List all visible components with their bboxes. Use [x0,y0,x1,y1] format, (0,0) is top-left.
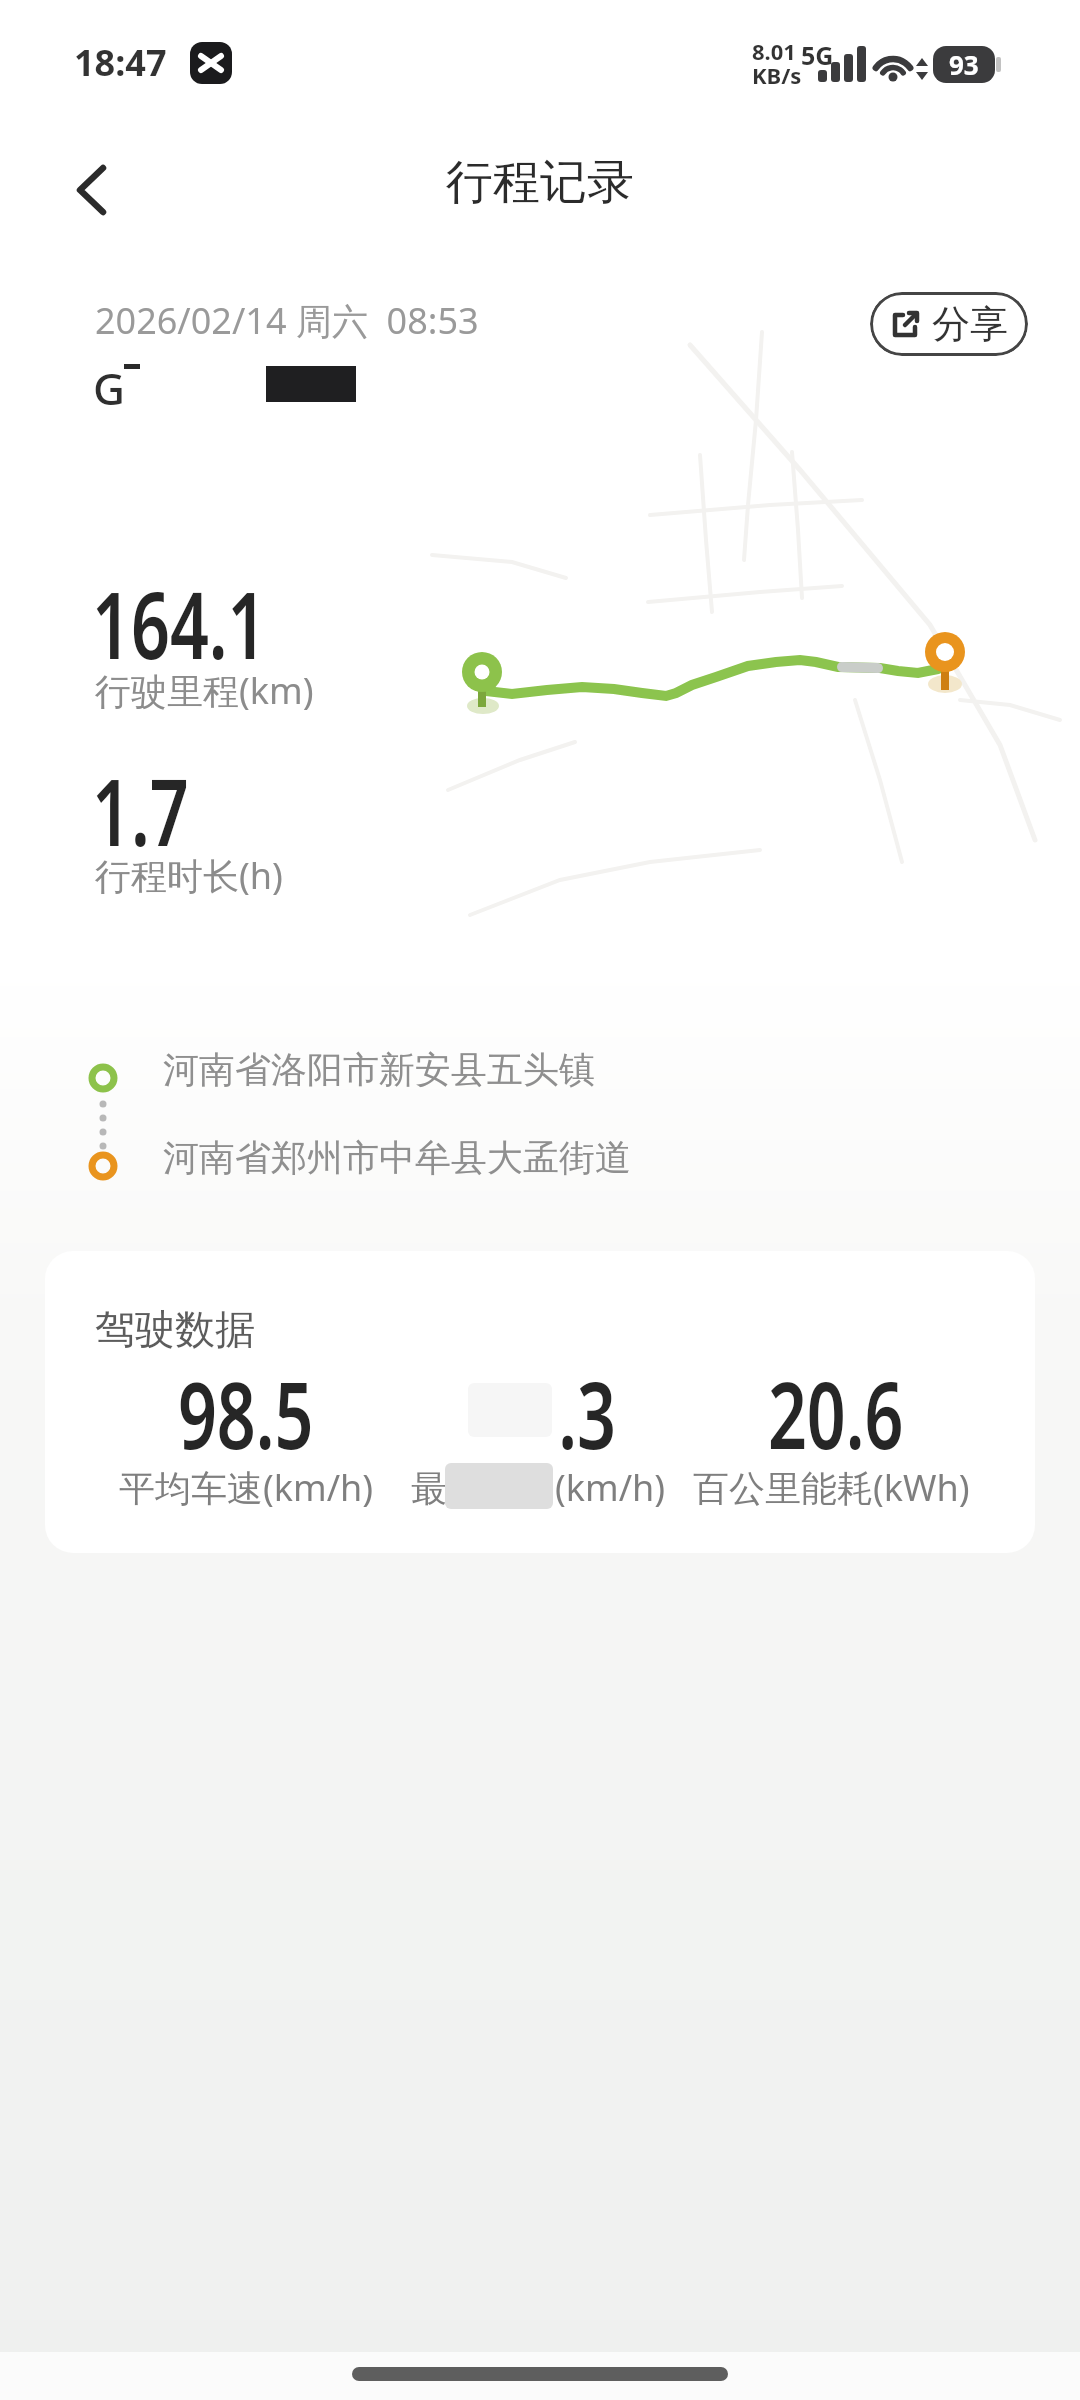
staticText: 2026/02/14 周六 08:53 [95,296,479,345]
staticText: 百公里能耗(kWh) [693,1463,970,1512]
staticText: 平均车速(km/h) [119,1463,374,1512]
staticText: 河南省郑州市中牟县大孟街道 [163,1135,631,1180]
staticText: G [93,358,125,418]
staticText: 18:47 [74,38,167,87]
button[interactable]: 驾驶数据 [45,1251,1035,1553]
staticText: KB/s [752,60,802,90]
staticText: 5G [801,38,834,72]
staticText: 164.1 [92,561,267,686]
staticText: 98.5 [178,1351,314,1476]
button[interactable] [55,152,131,228]
staticText: 最高车速(km/h) [411,1463,666,1512]
staticText: 行驶里程(km) [95,666,314,715]
staticText: 行程时长(h) [95,851,283,900]
staticText: .3 [558,1351,617,1476]
staticText: 河南省洛阳市新安县五头镇 [163,1047,595,1092]
staticText: 20.6 [768,1351,904,1476]
staticText: 行程记录 [446,153,634,212]
staticText: 1.7 [92,748,189,873]
staticText: 93 [949,47,979,82]
staticText: 驾驶数据 [95,1304,255,1354]
staticText: 8.01 [752,36,796,66]
staticText: 分享 [932,300,1008,348]
button[interactable]: 分享 [870,292,1028,356]
